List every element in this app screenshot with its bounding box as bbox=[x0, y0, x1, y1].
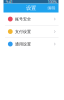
staticText: 账号安全 bbox=[15, 17, 31, 21]
button[interactable]: 通用设置 bbox=[3, 38, 58, 50]
staticText: 通用设置 bbox=[15, 42, 31, 46]
button[interactable]: 编辑 bbox=[46, 5, 56, 10]
staticText: 支付设置 bbox=[15, 29, 31, 34]
staticText: 编辑 bbox=[47, 5, 55, 10]
staticText: 9:41 bbox=[5, 0, 12, 4]
staticText: 100% bbox=[47, 0, 56, 4]
button[interactable]: 支付设置 bbox=[3, 25, 58, 38]
button[interactable]: 账号安全 bbox=[3, 13, 58, 25]
staticText: 设置 bbox=[26, 5, 36, 11]
